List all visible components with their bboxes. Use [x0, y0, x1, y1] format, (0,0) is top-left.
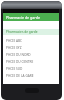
button[interactable]: Pharmacie de garde: [3, 13, 59, 21]
staticText: PHCIE ABC: [6, 39, 23, 43]
button[interactable]: PHCIE DU NORD: [3, 51, 59, 58]
staticText: Pharmacies de garde: [6, 30, 38, 34]
button[interactable]: PHCIE SUD: [3, 65, 59, 72]
button[interactable]: PHCIE DU CENTRE: [3, 58, 59, 65]
staticText: PHCIE XYZ: [6, 46, 22, 50]
staticText: PHCIE DE LA GARE: [6, 74, 34, 78]
button[interactable]: PHCIE ABC: [3, 37, 59, 44]
staticText: PHCIE DU CENTRE: [6, 60, 34, 64]
button[interactable]: PHCIE DE LA GARE: [3, 72, 59, 79]
staticText: PHCIE DU NORD: [6, 53, 31, 57]
staticText: Pharmacie de garde: [6, 15, 40, 20]
button[interactable]: PHCIE XYZ: [3, 44, 59, 51]
staticText: PHCIE SUD: [6, 67, 23, 71]
